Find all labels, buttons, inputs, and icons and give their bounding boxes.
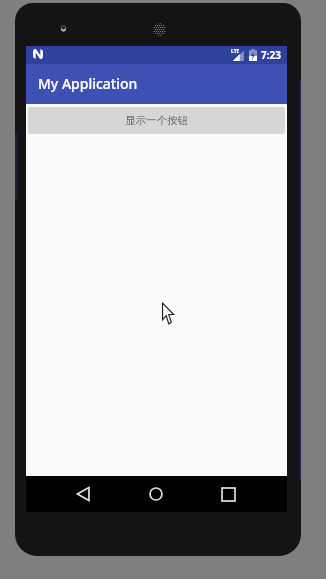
button[interactable]: Back	[60, 476, 107, 512]
button[interactable]: Recents	[205, 476, 252, 512]
button[interactable]: My Application	[26, 64, 287, 104]
staticText: My Application	[38, 74, 138, 93]
staticText: 7:23	[261, 48, 281, 62]
button[interactable]: Home	[132, 476, 179, 512]
staticText: 显示一个按钮	[125, 114, 188, 127]
button[interactable]: 显示一个按钮	[28, 107, 285, 134]
staticText: LTE	[231, 48, 240, 55]
